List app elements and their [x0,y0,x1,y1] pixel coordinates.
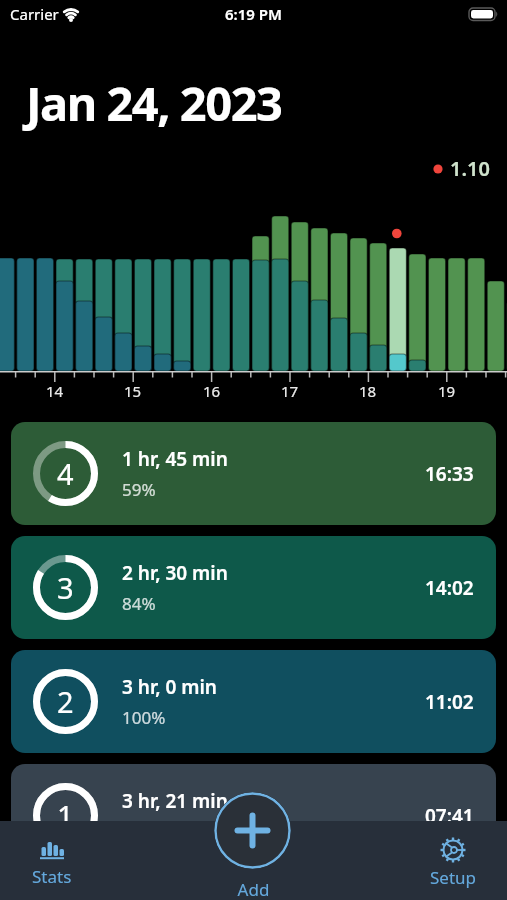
staticText: 59% [122,478,156,501]
staticText: 14 [46,381,64,401]
staticText: Stats [32,865,72,888]
staticText: 18 [359,381,377,401]
staticText: 14:02 [425,575,474,601]
staticText: 17 [281,381,299,401]
staticText: 4 [57,454,74,493]
staticText: 2 [57,682,74,721]
staticText: 15 [124,381,142,401]
staticText: 2 hr, 30 min [122,560,228,586]
staticText: 1.10 [450,155,490,182]
button[interactable]: Setup [421,837,485,889]
staticText: 1 [57,796,74,835]
button[interactable] [214,792,291,869]
staticText: Carrier [10,4,59,24]
staticText: 6:19 PM [0,4,507,24]
staticText: 100% [122,820,166,843]
button[interactable]: 2 [11,650,496,753]
staticText: Setup [430,866,477,889]
button[interactable]: 3 [11,536,496,639]
staticText: 11:02 [425,689,474,715]
staticText: 3 hr, 0 min [122,674,217,700]
staticText: 1 hr, 45 min [122,446,228,472]
staticText: Add [0,878,507,900]
button[interactable]: 1 [11,764,496,867]
staticText: 19 [438,381,456,401]
button[interactable]: 4 [11,422,496,525]
button[interactable]: Stats [20,838,84,888]
staticText: 16:33 [425,461,474,487]
staticText: 16 [203,381,221,401]
staticText: 07:41 [425,803,474,829]
staticText: 100% [122,706,166,729]
staticText: 84% [122,592,156,615]
staticText: 3 [57,568,74,607]
staticText: Jan 24, 2023 [26,71,282,135]
staticText: 3 hr, 21 min [122,788,228,814]
